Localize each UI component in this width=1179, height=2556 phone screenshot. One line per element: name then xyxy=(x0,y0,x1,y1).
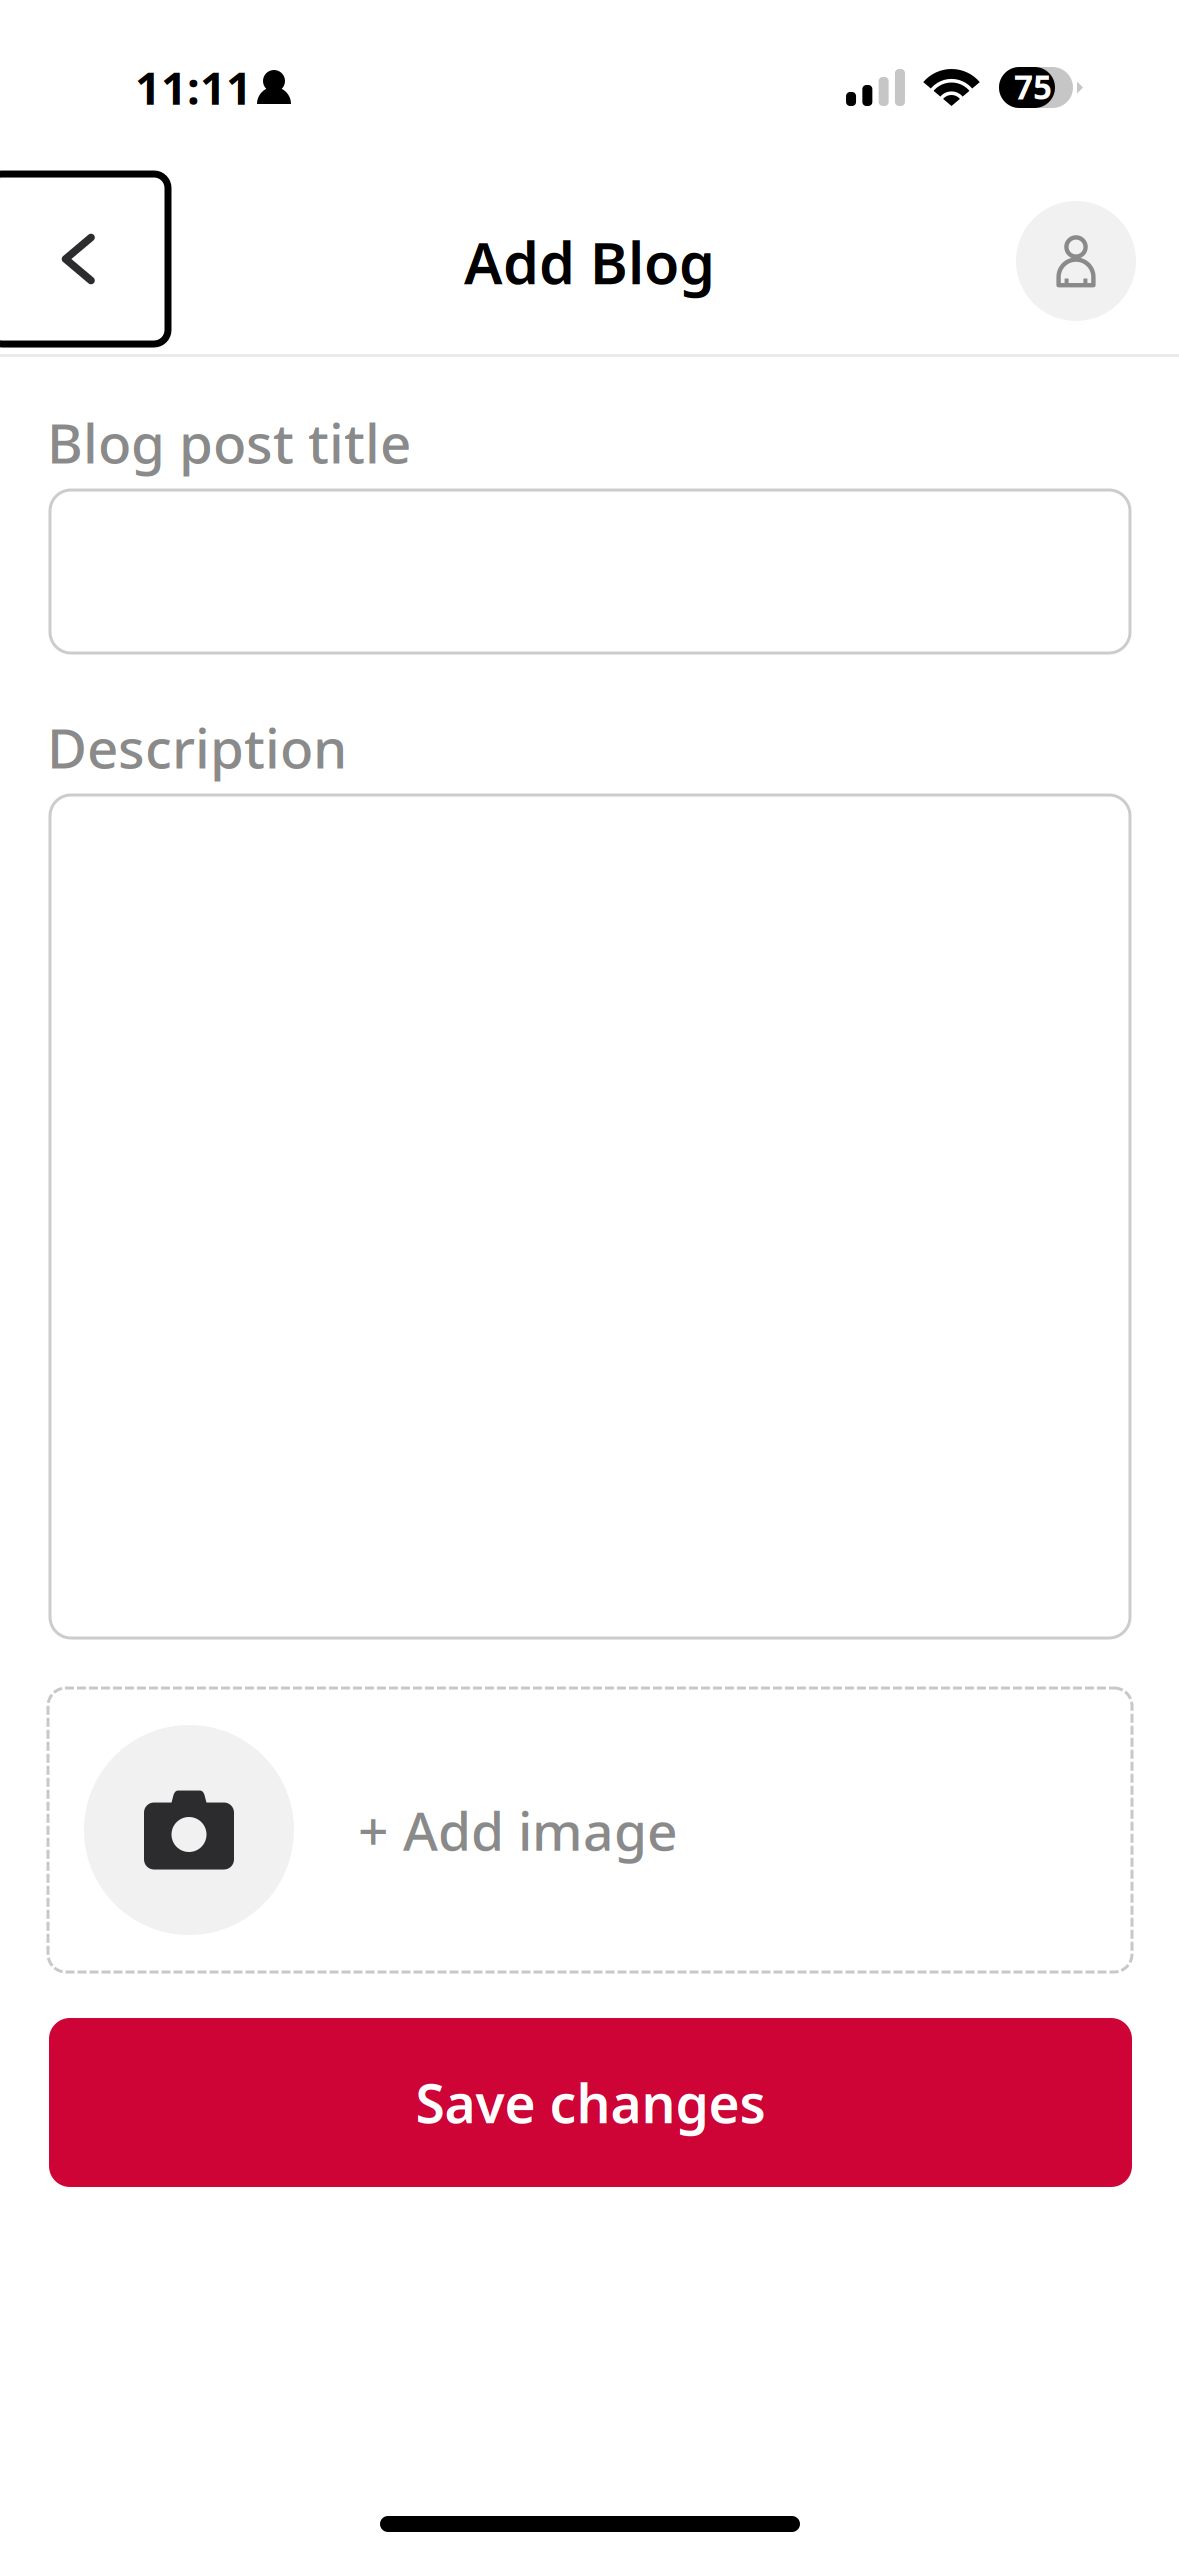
button[interactable]: Save changes xyxy=(49,2018,1132,2187)
staticText: + Add image xyxy=(358,1795,678,1865)
button[interactable]: Back xyxy=(0,174,168,344)
staticText: Save changes xyxy=(415,2067,765,2138)
staticText: Blog post title xyxy=(47,406,411,479)
button[interactable]: Profile xyxy=(1016,201,1136,321)
staticText: Add Blog xyxy=(464,224,715,300)
staticText: 11:11 xyxy=(135,57,252,117)
staticText: 75 xyxy=(1014,64,1052,109)
button[interactable]: + Add image xyxy=(48,1688,1132,1972)
staticText: Description xyxy=(47,711,347,784)
